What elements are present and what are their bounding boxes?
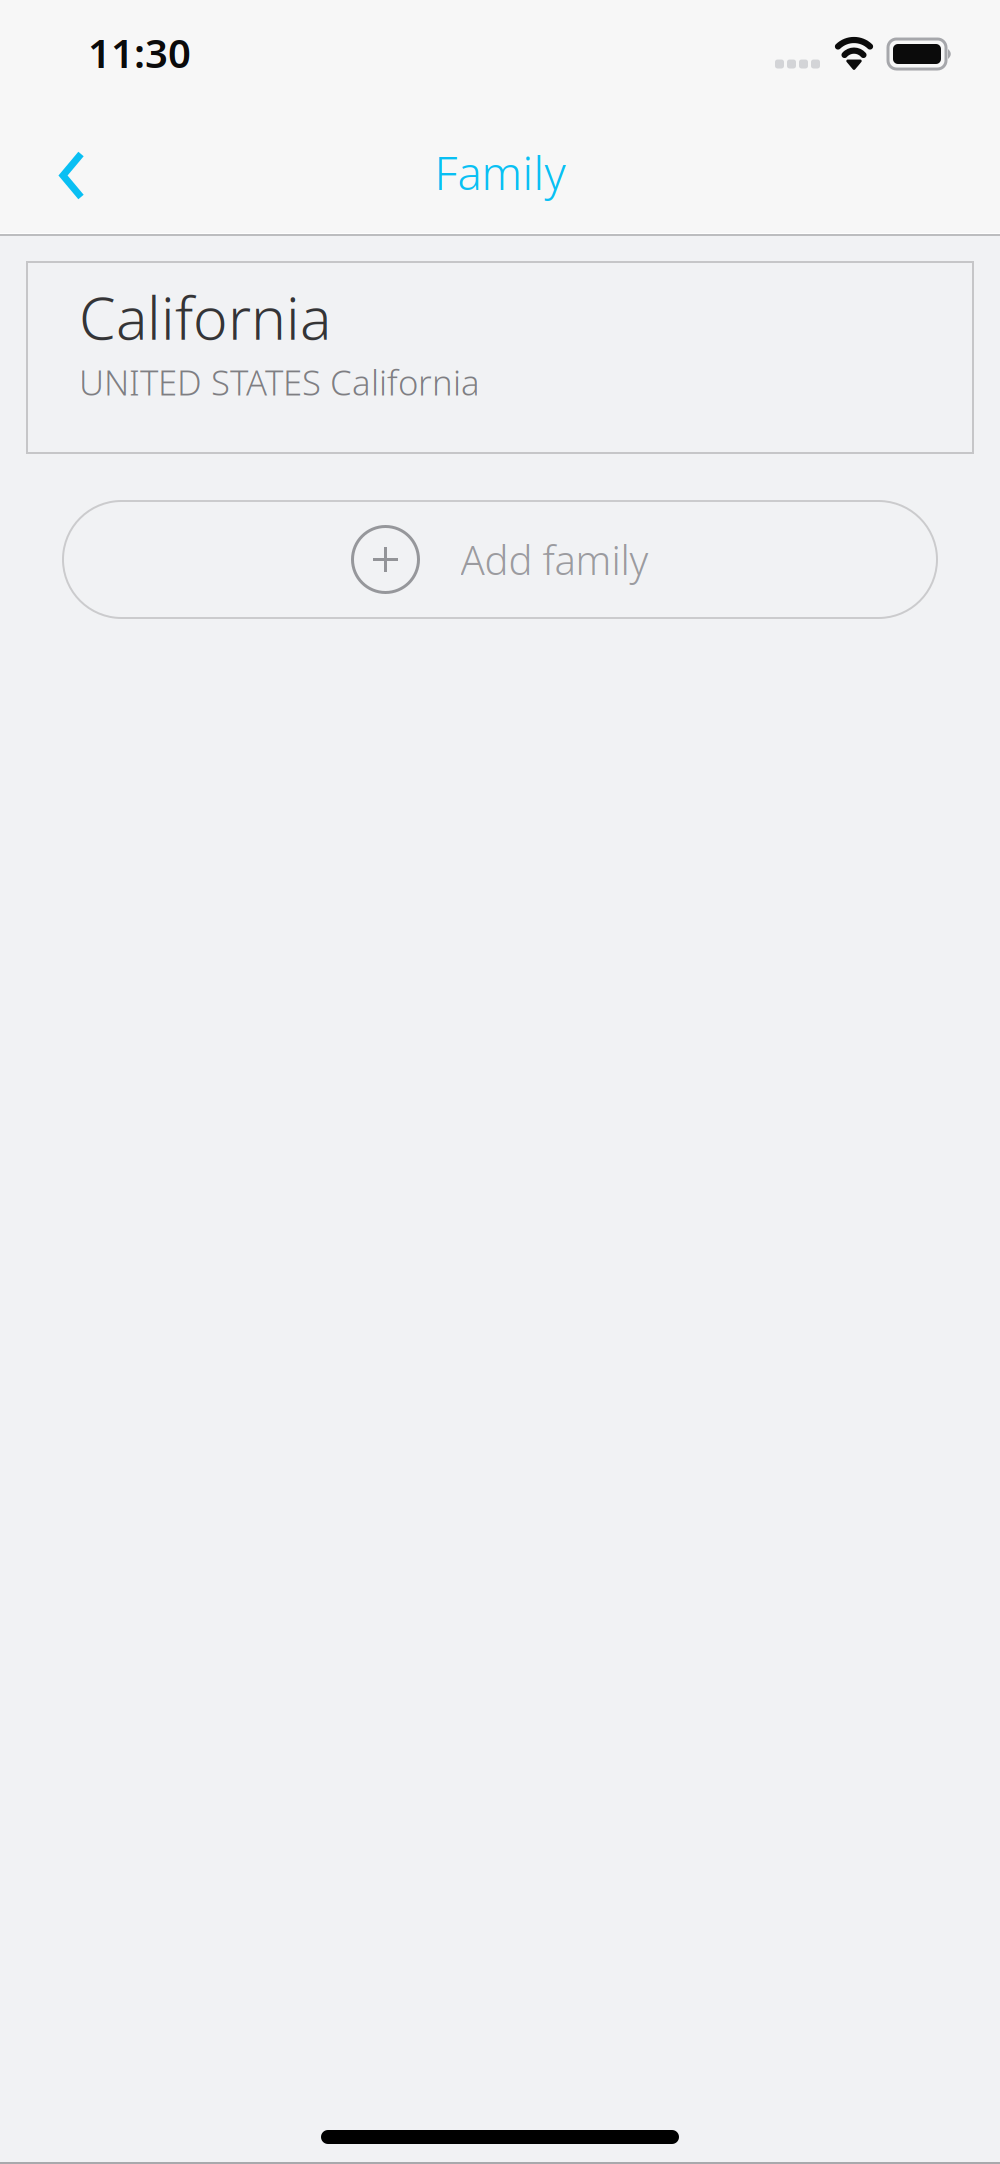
staticText: California — [79, 278, 331, 356]
staticText: UNITED STATES California — [79, 359, 480, 405]
staticText: Family — [434, 142, 565, 203]
staticText: 11:30 — [88, 26, 191, 79]
button[interactable]: Back — [0, 117, 100, 223]
staticText: Add family — [460, 533, 648, 586]
button[interactable]: California — [27, 262, 973, 453]
button[interactable]: Add family — [63, 501, 937, 618]
